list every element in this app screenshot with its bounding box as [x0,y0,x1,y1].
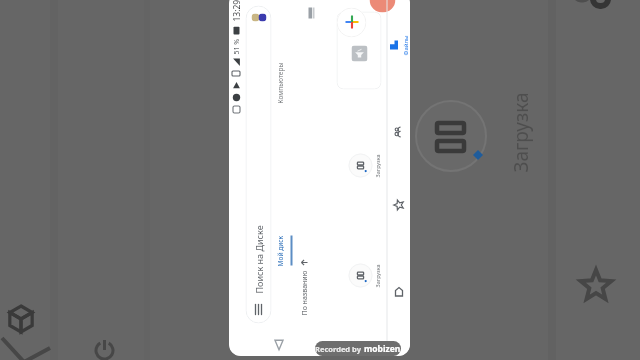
staticText: Загрузка [373,263,380,287]
staticText: Файлы [401,34,409,55]
staticText: Recorded by [315,344,361,354]
button[interactable]: Menu [245,5,271,323]
staticText: По названию [299,270,309,315]
button[interactable]: Recent [386,270,410,314]
button[interactable]: По названию [299,258,309,315]
button[interactable]: Загрузка [348,143,384,187]
other: Menu [253,304,263,314]
staticText: Поиск на Диске [252,224,264,293]
button[interactable]: Back [273,339,284,350]
staticText: 13:29 [230,0,242,21]
button[interactable]: Switch view [308,7,314,18]
button[interactable]: Мой диск [275,233,284,269]
button[interactable]: Загрузка [348,253,384,297]
button[interactable]: Shared [386,110,410,154]
staticText: Мой диск [275,235,284,266]
button[interactable]: Starred [386,183,410,227]
button[interactable]: Create [336,7,366,37]
staticText: mobizen [364,343,401,355]
button[interactable]: Компьютеры [275,59,284,107]
staticText: Загрузка [507,91,533,172]
staticText: Загрузка [373,153,380,177]
staticText: Компьютеры [275,62,284,103]
staticText: 51 % [231,38,241,54]
button[interactable]: Files [386,23,410,67]
